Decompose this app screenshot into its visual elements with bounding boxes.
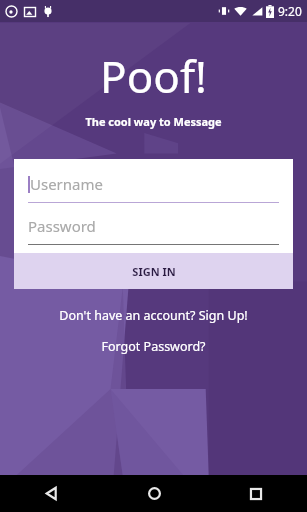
button[interactable]: SIGN IN: [14, 253, 293, 289]
staticText: Poof!: [100, 46, 207, 106]
button[interactable]: Don't have an account? Sign Up!: [0, 307, 307, 324]
button[interactable]: Forgot Password?: [0, 338, 307, 355]
button[interactable]: Password: [28, 213, 279, 245]
button[interactable]: Recent apps: [205, 475, 307, 512]
staticText: Don't have an account? Sign Up!: [59, 307, 248, 324]
staticText: Username: [30, 174, 103, 194]
staticText: 9:20: [278, 3, 302, 19]
staticText: SIGN IN: [132, 264, 176, 279]
button[interactable]: Username: [28, 171, 279, 203]
staticText: Forgot Password?: [101, 338, 206, 355]
button[interactable]: Home: [103, 475, 205, 512]
staticText: The cool way to Message: [85, 114, 222, 129]
staticText: Password: [28, 216, 96, 236]
button[interactable]: Back: [0, 475, 103, 512]
